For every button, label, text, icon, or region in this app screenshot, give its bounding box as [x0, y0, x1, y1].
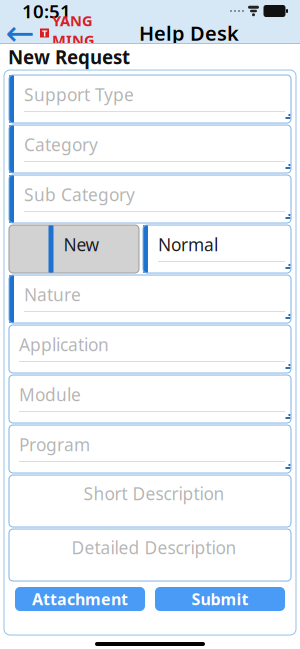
staticText: Help Desk	[139, 20, 239, 46]
staticText: Attachment	[32, 588, 128, 610]
button[interactable]: Back	[0, 20, 40, 46]
staticText: Category	[24, 133, 98, 156]
button[interactable]: Category	[9, 125, 291, 173]
staticText: Application	[19, 333, 109, 356]
staticText: 10:51	[22, 0, 71, 23]
button[interactable]: Short Description	[9, 475, 291, 527]
button[interactable]: Module	[9, 375, 291, 423]
button[interactable]: Attachment	[15, 587, 145, 611]
staticText: Normal	[158, 233, 218, 256]
staticText: Module	[19, 383, 81, 406]
button[interactable]: Normal	[143, 225, 291, 273]
button[interactable]: Support Type	[9, 75, 291, 123]
button[interactable]: New	[9, 225, 139, 273]
staticText: New Request	[8, 45, 130, 69]
staticText: Detailed Description	[71, 536, 236, 559]
staticText: Support Type	[24, 83, 134, 106]
staticText: Short Description	[83, 482, 224, 505]
button[interactable]: Program	[9, 425, 291, 473]
staticText: New	[63, 233, 99, 256]
staticText: ←	[5, 13, 34, 53]
button[interactable]: Submit	[155, 587, 285, 611]
staticText: Nature	[24, 283, 81, 306]
button[interactable]: Detailed Description	[9, 529, 291, 581]
staticText: T	[42, 27, 47, 39]
staticText: YANG MING MARINE TRANSPORT CORP.	[52, 50, 124, 55]
staticText: Program	[19, 433, 90, 456]
button[interactable]: Application	[9, 325, 291, 373]
staticText: Submit	[191, 588, 248, 610]
button[interactable]: Sub Category	[9, 175, 291, 223]
staticText: YANG MING	[52, 11, 95, 50]
button[interactable]: Nature	[9, 275, 291, 323]
staticText: Sub Category	[24, 183, 135, 206]
